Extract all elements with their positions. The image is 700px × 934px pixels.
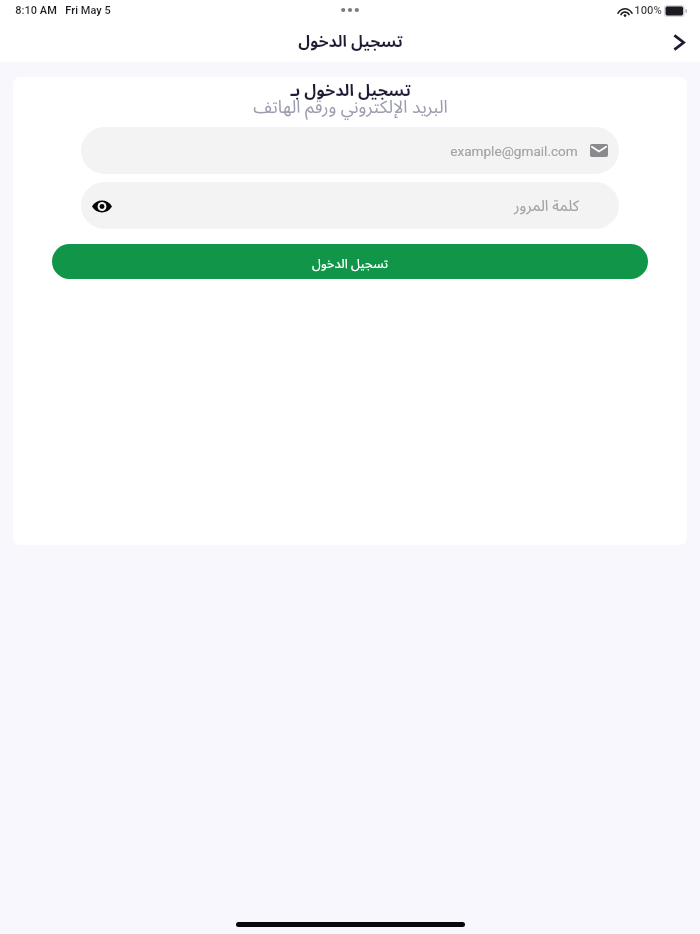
staticText: البريد الإلكتروني ورقم الهاتف (253, 89, 448, 126)
staticText: تسجيل الدخول بـ (290, 77, 411, 108)
staticText: 8:10 AM (15, 4, 57, 17)
button[interactable]: Show password (81, 182, 619, 229)
staticText: 100% (634, 4, 662, 17)
staticText: Fri May 5 (65, 4, 111, 17)
button[interactable]: Show password (83, 187, 121, 225)
staticText: example@gmail.com (450, 143, 578, 159)
staticText: تسجيل الدخول (312, 250, 388, 277)
button[interactable]: example@gmail.com (81, 127, 619, 174)
staticText: تسجيل الدخول (298, 25, 403, 59)
button[interactable]: تسجيل الدخول (52, 244, 648, 279)
staticText: كلمة المرور (514, 190, 579, 222)
button[interactable]: Back (661, 24, 697, 60)
